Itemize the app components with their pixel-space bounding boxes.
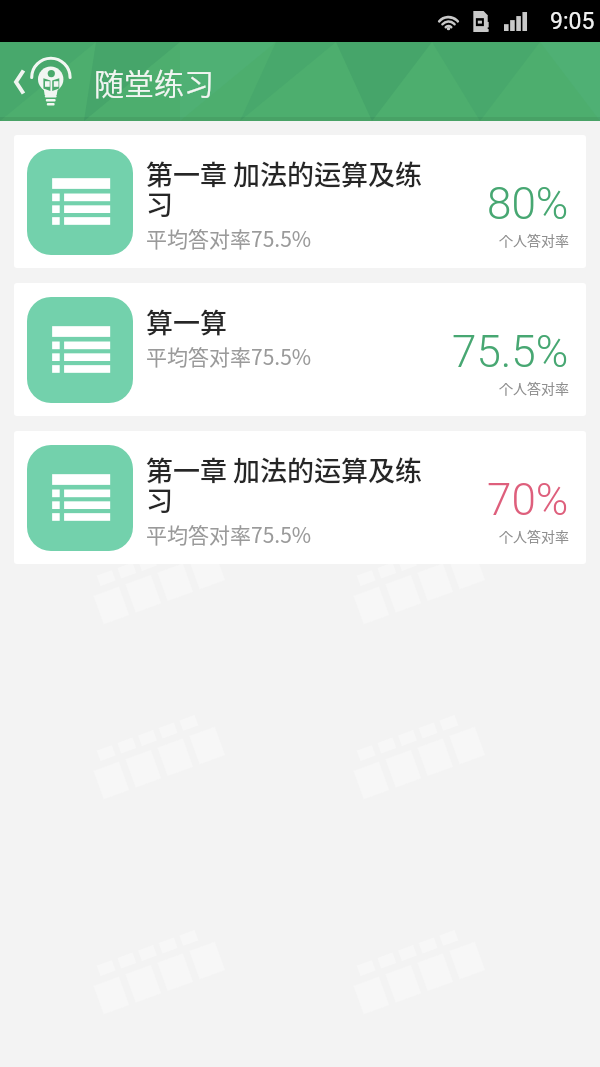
staticText: 平均答对率75.5% (146, 223, 312, 253)
staticText: 70% (487, 474, 569, 526)
staticText: 随堂练习 (94, 60, 214, 103)
staticText: 平均答对率75.5% (146, 341, 312, 371)
staticText: 算一算 (146, 302, 227, 341)
staticText: 9:05 (550, 8, 595, 35)
staticText: 个人答对率 (499, 230, 569, 250)
staticText: 平均答对率75.5% (146, 519, 312, 549)
staticText: 个人答对率 (499, 526, 569, 546)
staticText: 第一章 加法的运算及练习 (146, 154, 434, 223)
button[interactable]: 第一章 加法的运算及练习 (14, 135, 586, 268)
button[interactable]: 算一算 (14, 283, 586, 416)
staticText: 第一章 加法的运算及练习 (146, 450, 434, 519)
button[interactable]: Back (0, 42, 36, 121)
button[interactable]: 第一章 加法的运算及练习 (14, 431, 586, 564)
staticText: 75.5% (452, 326, 569, 378)
staticText: 个人答对率 (499, 378, 569, 398)
staticText: 80% (487, 178, 569, 230)
